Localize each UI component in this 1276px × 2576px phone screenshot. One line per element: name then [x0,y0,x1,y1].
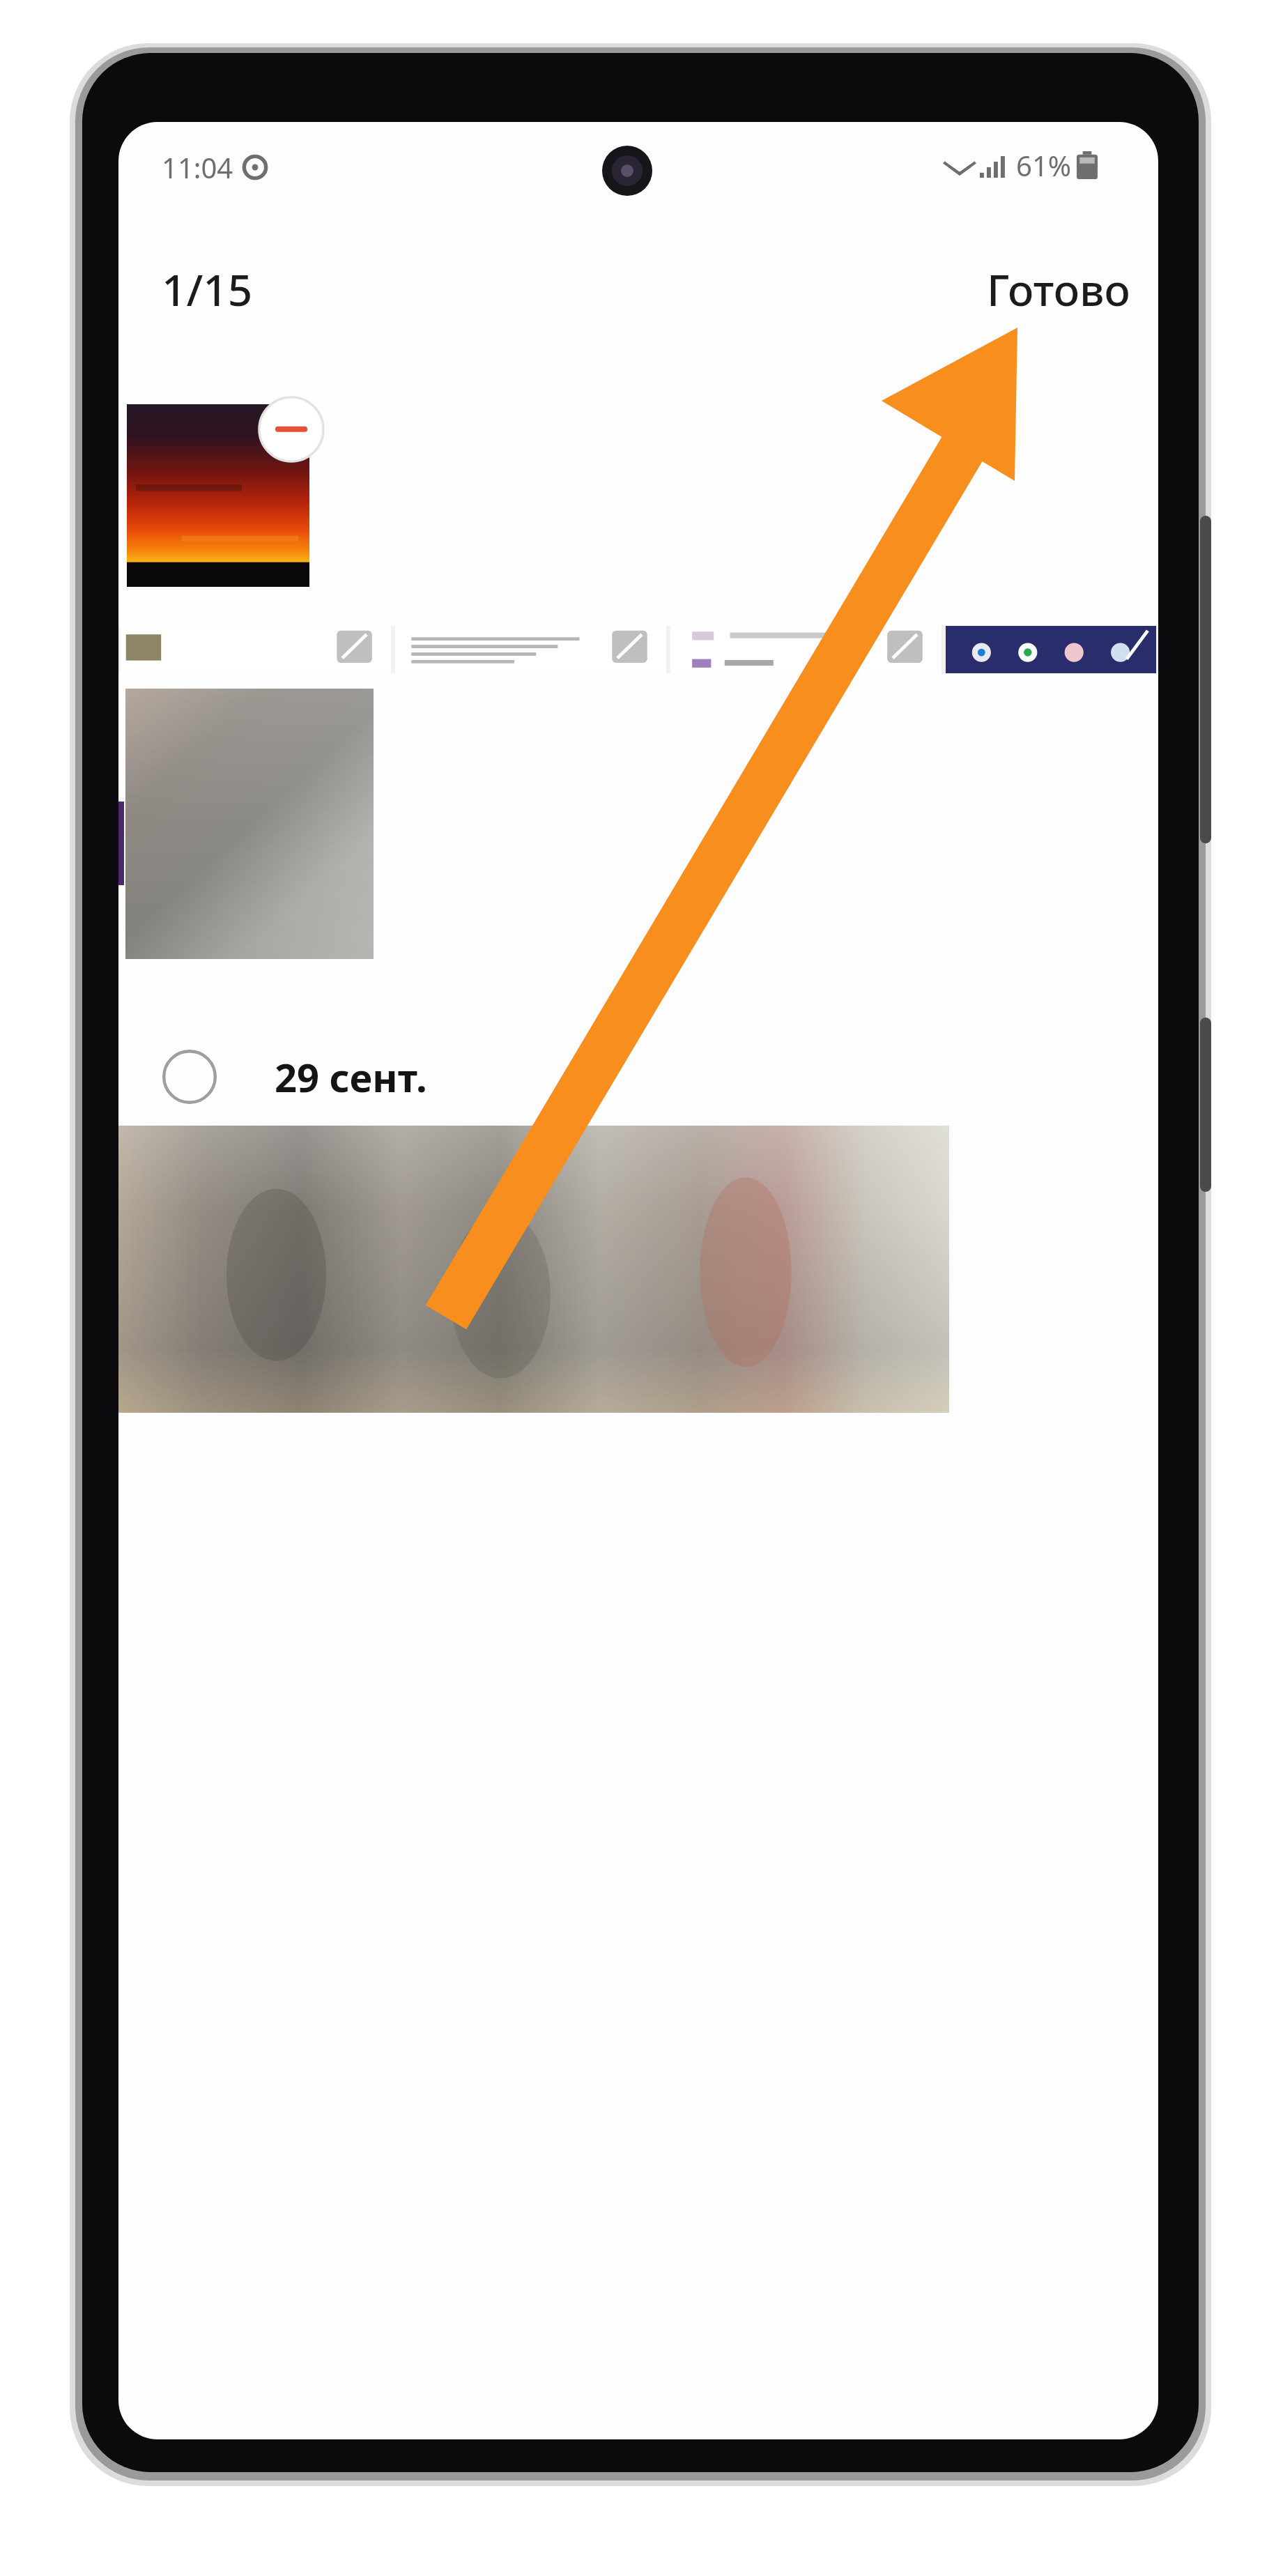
button[interactable]: Выбрать все за 29 сентября [162,1049,217,1105]
button[interactable]: 1/15 [162,260,253,319]
staticText: Готово [987,260,1130,319]
staticText: 61% [1016,146,1071,184]
button[interactable]: Готово [987,260,1130,319]
button[interactable]: Выбранное фото [127,404,309,587]
button[interactable]: Скриншот [121,626,391,673]
button[interactable]: Скриншот [395,626,666,673]
button[interactable]: Фото [125,689,374,959]
staticText: 29 сент. [275,1050,427,1103]
staticText: 1/15 [162,260,253,319]
button[interactable]: Скриншот [946,626,1156,673]
button[interactable]: Фото [118,1126,949,1413]
button[interactable]: Убрать из выбранного [258,396,325,463]
button[interactable]: Скриншот [670,626,941,673]
staticText: 11:04 [162,148,233,186]
button[interactable]: Выбрать все за 29 сентября [118,1025,1158,1129]
